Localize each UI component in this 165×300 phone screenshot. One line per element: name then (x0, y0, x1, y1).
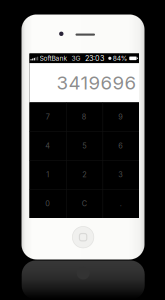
staticText: 23:03 (85, 54, 104, 63)
staticText: 84% (113, 54, 128, 62)
staticText: SoftBank (40, 54, 68, 62)
button[interactable]: 7 (29, 102, 66, 131)
staticText: 0 (45, 199, 50, 208)
staticText: . (120, 199, 122, 208)
staticText: 9 (118, 112, 123, 121)
staticText: 7 (46, 112, 50, 121)
button[interactable]: 5 (66, 131, 102, 160)
staticText: C (82, 199, 87, 208)
staticText: 3419696 (56, 71, 136, 94)
button[interactable]: 1 (29, 160, 66, 189)
button[interactable]: C (66, 189, 102, 218)
staticText: 2 (82, 170, 86, 179)
staticText: 3 (118, 170, 123, 179)
button[interactable]: 4 (29, 131, 66, 160)
button[interactable]: 6 (102, 131, 139, 160)
button[interactable]: 0 (29, 189, 66, 218)
button[interactable]: 2 (66, 160, 102, 189)
button[interactable]: 3 (102, 160, 139, 189)
staticText: 3G (68, 54, 81, 62)
staticText: 4 (45, 141, 50, 150)
staticText: 1 (46, 170, 49, 179)
button[interactable]: 8 (66, 102, 102, 131)
button[interactable]: 9 (102, 102, 139, 131)
staticText: 8 (82, 112, 87, 121)
staticText: 6 (118, 141, 123, 150)
staticText: 5 (82, 141, 86, 150)
